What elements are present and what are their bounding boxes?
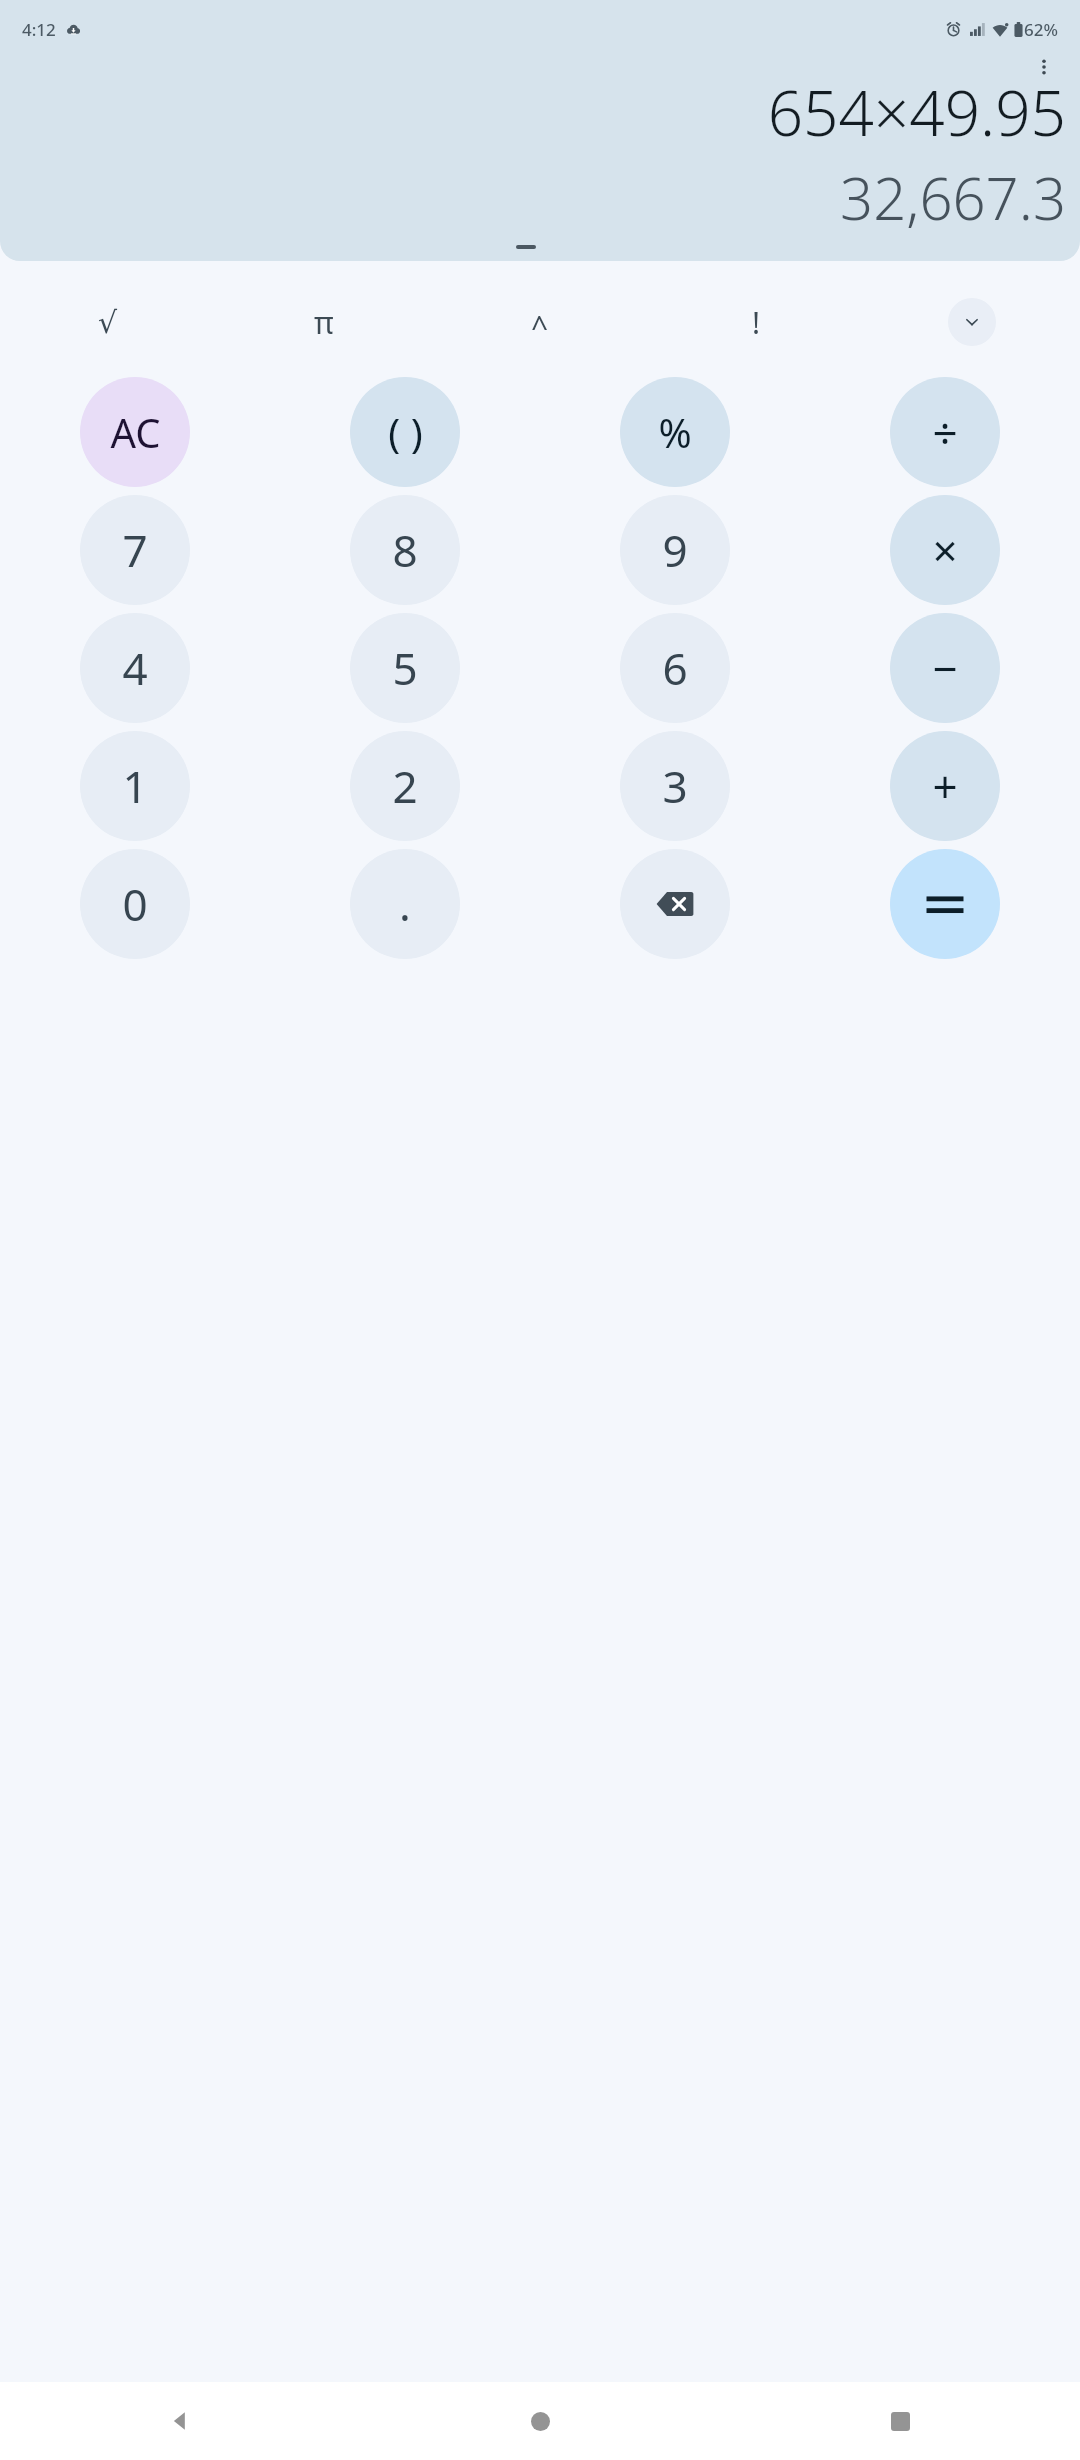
button[interactable]: 0 xyxy=(80,849,190,959)
button[interactable]: Backspace xyxy=(620,849,730,959)
staticText: 9 xyxy=(662,520,688,580)
button[interactable]: % xyxy=(620,377,730,487)
staticText: + xyxy=(932,756,958,816)
button[interactable]: 4 xyxy=(80,613,190,723)
button[interactable]: + xyxy=(890,731,1000,841)
staticText: 0 xyxy=(122,874,148,934)
staticText: 8 xyxy=(392,520,418,580)
staticText: 7 xyxy=(122,520,148,580)
button[interactable]: 2 xyxy=(350,731,460,841)
staticText: ! xyxy=(752,302,761,343)
button[interactable]: π xyxy=(216,283,432,361)
staticText: 6 xyxy=(662,638,688,698)
button[interactable]: Recent apps xyxy=(720,2382,1080,2460)
button[interactable]: Back xyxy=(0,2382,360,2460)
staticText: % xyxy=(658,405,692,459)
button[interactable]: Equals xyxy=(890,849,1000,959)
staticText: ^ xyxy=(531,306,549,347)
staticText: . xyxy=(399,874,411,934)
button[interactable]: AC xyxy=(80,377,190,487)
staticText: 2 xyxy=(392,756,418,816)
button[interactable]: More options xyxy=(1020,43,1068,91)
staticText: ( ) xyxy=(388,405,423,459)
button[interactable]: ÷ xyxy=(890,377,1000,487)
button[interactable]: 1 xyxy=(80,731,190,841)
staticText: 654×49.95 xyxy=(0,70,1066,154)
staticText: 62% xyxy=(1024,18,1058,41)
button[interactable]: Expand keypad xyxy=(948,298,996,346)
button[interactable]: . xyxy=(350,849,460,959)
staticText: ÷ xyxy=(932,402,958,462)
button[interactable]: − xyxy=(890,613,1000,723)
button[interactable]: × xyxy=(890,495,1000,605)
button[interactable]: ( ) xyxy=(350,377,460,487)
staticText: × xyxy=(932,520,958,580)
button[interactable]: 8 xyxy=(350,495,460,605)
staticText: 4:12 xyxy=(22,18,56,41)
button[interactable]: 5 xyxy=(350,613,460,723)
button[interactable]: ! xyxy=(648,283,864,361)
button[interactable]: Home xyxy=(360,2382,720,2460)
button[interactable]: 3 xyxy=(620,731,730,841)
staticText: 4 xyxy=(122,638,148,698)
button[interactable]: 6 xyxy=(620,613,730,723)
button[interactable]: √ xyxy=(0,283,216,361)
button[interactable]: ^ xyxy=(432,283,648,361)
staticText: 1 xyxy=(122,756,148,816)
staticText: 5 xyxy=(392,638,418,698)
button[interactable]: 7 xyxy=(80,495,190,605)
staticText: AC xyxy=(110,405,161,459)
staticText: 32,667.3 xyxy=(0,158,1066,237)
staticText: √ xyxy=(98,305,118,340)
button[interactable]: 9 xyxy=(620,495,730,605)
staticText: − xyxy=(932,638,958,698)
staticText: π xyxy=(314,302,334,343)
staticText: 3 xyxy=(662,756,688,816)
